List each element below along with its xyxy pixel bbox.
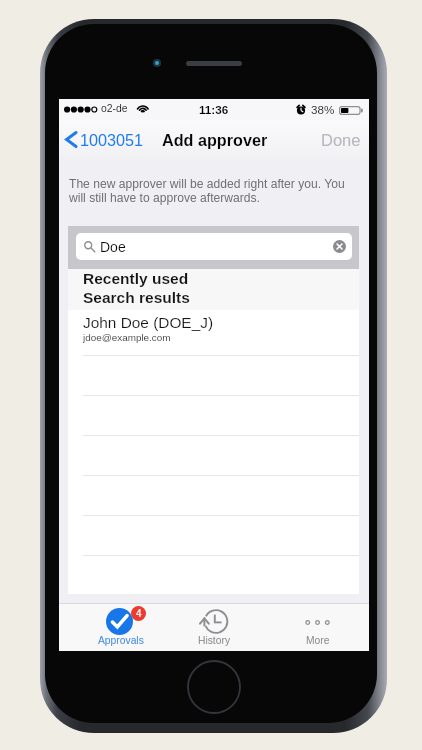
staticText: More [306,635,330,647]
button[interactable]: History [163,604,266,651]
staticText: 11:36 [199,103,229,116]
staticText: History [198,635,231,647]
staticText: jdoe@example.com [83,332,171,343]
button[interactable] [68,395,359,435]
button[interactable]: 4 [59,604,163,651]
button[interactable] [68,435,359,475]
staticText: Done [321,131,361,149]
staticText: Approvals [98,635,144,647]
staticText: 38% [311,103,335,116]
staticText: The new approver will be added right aft… [69,177,361,204]
staticText: 1003051 [80,131,144,149]
button[interactable] [68,355,359,395]
button[interactable]: Clear search text [326,233,352,260]
staticText: Search results [83,289,190,306]
staticText: o2-de [101,103,128,115]
staticText: Add approver [162,131,268,149]
button[interactable]: John Doe (DOE_J) [68,310,359,355]
button[interactable] [68,475,359,515]
staticText: Recently used [83,270,189,287]
staticText: Doe [100,239,126,255]
button[interactable] [68,555,359,595]
button[interactable]: Doe [76,233,352,260]
button[interactable]: Done [313,120,369,159]
staticText: John Doe (DOE_J) [83,314,214,331]
button[interactable]: 1003051 [59,120,150,159]
button[interactable] [68,515,359,555]
staticText: 4 [136,608,142,619]
button[interactable]: More [266,604,369,651]
